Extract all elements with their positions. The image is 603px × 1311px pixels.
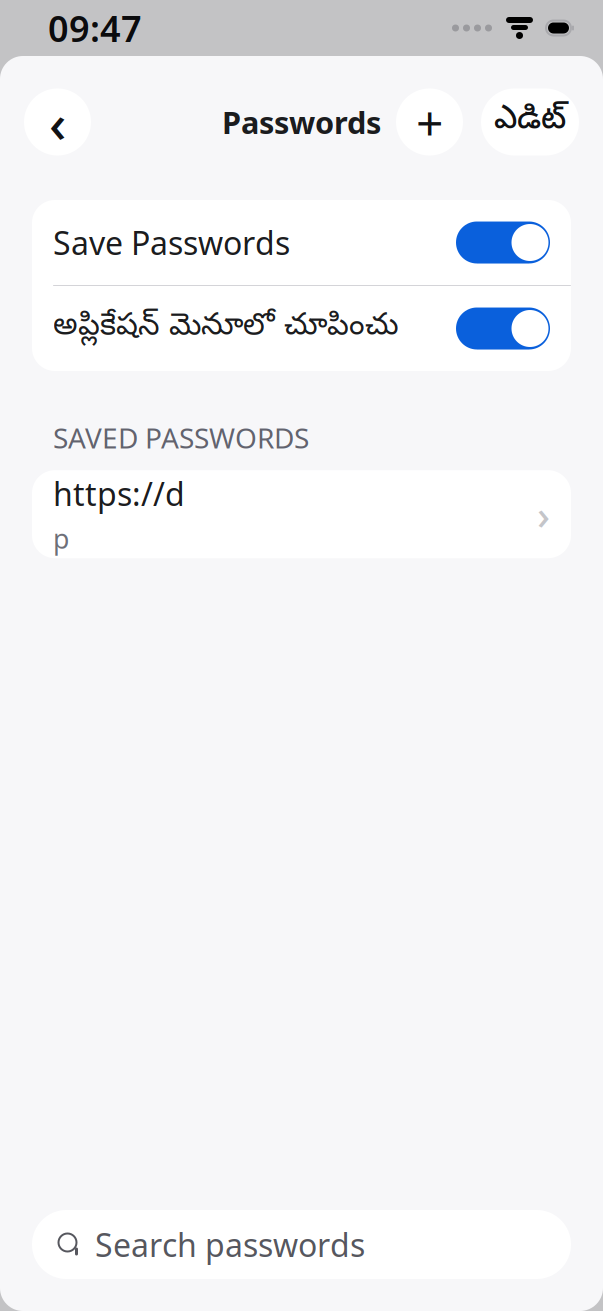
staticText: › (537, 488, 550, 541)
staticText: 09:47 (48, 4, 142, 52)
staticText: Passwords (222, 102, 381, 142)
button[interactable]: Back (24, 88, 91, 155)
button[interactable]: Save Passwords (32, 200, 571, 285)
staticText: ‹ (49, 87, 66, 157)
staticText: SAVED PASSWORDS (53, 419, 309, 456)
button[interactable]: Search passwords (32, 1210, 571, 1279)
staticText: + (416, 90, 443, 154)
staticText: https://d (53, 472, 185, 515)
staticText: p (53, 521, 69, 556)
staticText: అప్లికేషన్ మెనూలో చూపించు (53, 308, 399, 349)
button[interactable]: Add password (396, 88, 463, 155)
staticText: Save Passwords (53, 221, 290, 264)
button[interactable]: అప్లికేషన్ మెనూలో చూపించు (32, 286, 571, 371)
button[interactable]: ఎడిట్ (481, 88, 579, 155)
staticText: ఎడిట్ (494, 101, 566, 143)
staticText: Search passwords (95, 1223, 365, 1266)
button[interactable]: https://d (32, 470, 571, 558)
